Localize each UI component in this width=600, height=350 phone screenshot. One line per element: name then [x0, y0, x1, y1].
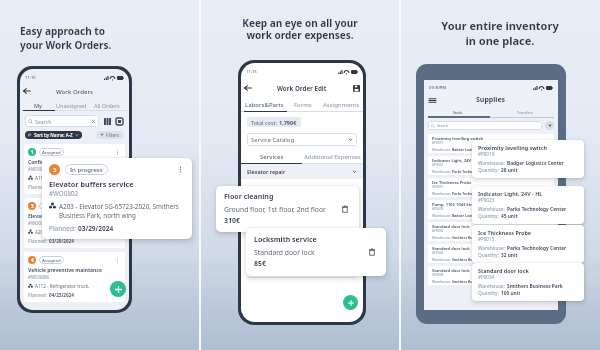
- staticText: 45 unit: [501, 213, 518, 220]
- button[interactable]: Assignments: [319, 98, 363, 112]
- button[interactable]: Add supply: [533, 286, 546, 299]
- button[interactable]: Standard door lock: [428, 222, 554, 241]
- staticText: Planned:: [49, 224, 78, 233]
- staticText: All Orders: [94, 102, 120, 109]
- button[interactable]: Ice Thickness Probe: [428, 178, 554, 197]
- staticText: Search: [437, 123, 448, 128]
- staticText: Planned:: [28, 238, 49, 244]
- staticText: Elevator buffers service: [28, 213, 87, 220]
- staticText: 4: [31, 257, 34, 263]
- staticText: Sort by Name: A-Z: [34, 132, 73, 138]
- button[interactable]: Floor cleaning: [241, 179, 363, 212]
- staticText: Planned:: [28, 184, 49, 190]
- button[interactable]: Additional Expenses: [302, 150, 363, 164]
- staticText: 03/29/2024: [78, 224, 114, 233]
- button[interactable]: Add expense: [343, 295, 358, 310]
- staticText: Planned:: [28, 292, 49, 298]
- button[interactable]: Filter: [545, 121, 554, 130]
- button[interactable]: 3: [24, 198, 125, 248]
- button[interactable]: Stock: [424, 107, 491, 118]
- button[interactable]: Pump, 110C 1043 Street: [428, 200, 554, 219]
- staticText: Smithers Business Park Warehouse: [507, 283, 578, 290]
- button[interactable]: Service Catalog: [247, 133, 357, 146]
- button[interactable]: Standard door lock: [428, 266, 554, 285]
- button[interactable]: Indicator Light, 24V - HL: [472, 186, 584, 224]
- button[interactable]: Transfers: [491, 107, 558, 118]
- staticText: Smithers Busine: [452, 235, 480, 239]
- staticText: Warehouse:: [478, 245, 507, 252]
- button[interactable]: Proximity levelling switch: [472, 140, 584, 178]
- staticText: Quantity:: [478, 167, 501, 174]
- button[interactable]: Save: [349, 81, 363, 95]
- button[interactable]: 3: [42, 158, 192, 239]
- staticText: Work Order Edit: [277, 84, 327, 92]
- staticText: #P0029: [432, 207, 444, 211]
- button[interactable]: Indicator Light, 24V - HL: [428, 156, 554, 175]
- button[interactable]: Ice Thickness Probe: [472, 225, 584, 263]
- staticText: A203 - Elevator SG-65723-2020,: [35, 229, 103, 235]
- button[interactable]: 4: [24, 252, 125, 302]
- button[interactable]: All Orders: [90, 99, 124, 111]
- button[interactable]: Labors&Parts: [241, 98, 287, 112]
- staticText: Quantity:: [478, 290, 501, 297]
- button[interactable]: Locksmith service: [246, 228, 386, 276]
- staticText: Badger Logistics Center Warehouse: [452, 213, 512, 217]
- button[interactable]: Locksmith service: [241, 212, 363, 245]
- staticText: Pump, 110C 1043 Street: [432, 202, 479, 207]
- button[interactable]: Services: [241, 150, 302, 164]
- staticText: Search: [35, 118, 52, 125]
- button[interactable]: Columns: [103, 117, 112, 126]
- button[interactable]: Standard door lock: [472, 263, 584, 301]
- button[interactable]: Standard door lock: [428, 244, 554, 263]
- button[interactable]: Proximity levelling switch: [428, 134, 554, 153]
- button[interactable]: View: [115, 117, 124, 126]
- button[interactable]: Sort by Name: A-Z: [25, 131, 82, 139]
- button[interactable]: Search: [428, 121, 542, 130]
- staticText: 1,790€: [279, 119, 297, 126]
- staticText: Filters: [106, 132, 120, 138]
- staticText: Total cost:: [251, 119, 279, 126]
- button[interactable]: Menu: [427, 95, 437, 105]
- button[interactable]: Delete: [350, 222, 357, 229]
- staticText: A11 - Elevator car,: [35, 175, 73, 181]
- button[interactable]: Search: [25, 115, 99, 127]
- button[interactable]: Add work order: [110, 281, 126, 297]
- staticText: Smithers Busine: [452, 257, 480, 261]
- staticText: 32 unit: [501, 252, 518, 259]
- staticText: Services: [260, 153, 284, 161]
- staticText: Ground floor, 1st floor, 2nd floor: [224, 205, 326, 214]
- staticText: Forms: [294, 101, 312, 109]
- button[interactable]: Back: [20, 84, 34, 98]
- staticText: Additional Expenses: [304, 153, 361, 161]
- button[interactable]: My: [23, 99, 53, 111]
- staticText: Standard door lock: [247, 226, 290, 233]
- staticText: #P0023: [478, 197, 495, 203]
- button[interactable]: Elevator repair: [241, 164, 363, 179]
- staticText: 03/29/2024: [49, 184, 74, 190]
- button[interactable]: Delete: [339, 203, 351, 215]
- staticText: Warehouse:: [478, 206, 507, 213]
- staticText: Standard door lock: [432, 246, 470, 251]
- staticText: Service Catalog: [251, 136, 295, 144]
- staticText: Transfers: [517, 110, 533, 115]
- staticText: 28 unit: [501, 167, 518, 174]
- button[interactable]: Floor cleaning: [216, 186, 359, 232]
- staticText: #WO0808: [28, 274, 49, 280]
- staticText: Floor cleaning: [224, 192, 274, 202]
- button[interactable]: Filters: [96, 131, 124, 139]
- staticText: Indicator Light, 24V - HL: [432, 158, 480, 163]
- staticText: #P0023: [432, 163, 444, 167]
- staticText: Warehouse:: [432, 257, 452, 261]
- staticText: Assigned: [42, 257, 61, 263]
- staticText: Assigned: [42, 149, 61, 155]
- button[interactable]: Delete: [366, 246, 378, 258]
- button[interactable]: Back: [241, 81, 255, 95]
- button[interactable]: 1: [24, 144, 125, 194]
- button[interactable]: Unassigned: [53, 99, 90, 111]
- button[interactable]: Forms: [287, 98, 319, 112]
- staticText: 310€: [224, 216, 241, 226]
- staticText: Ground floor, 1st floor, 2nd floor: [247, 193, 319, 200]
- button[interactable]: Boiler room inspection: [241, 245, 363, 278]
